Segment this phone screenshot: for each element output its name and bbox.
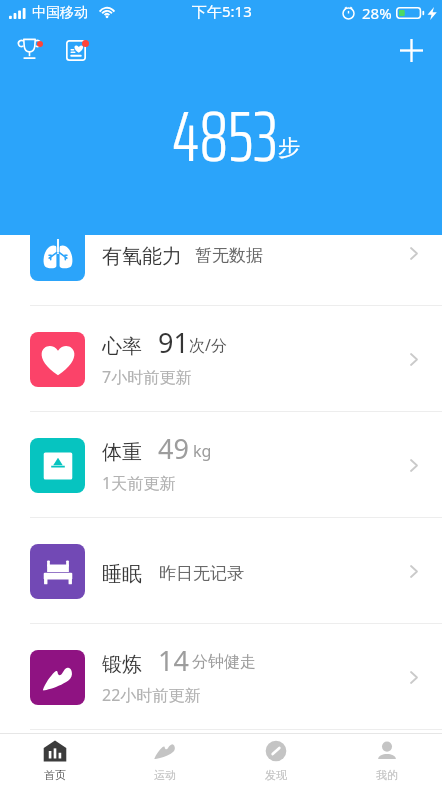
staticText: 暂无数据 bbox=[195, 245, 263, 266]
staticText: 1天前更新 bbox=[102, 472, 176, 494]
staticText: 28% bbox=[362, 3, 392, 23]
staticText: 7小时前更新 bbox=[102, 366, 192, 388]
staticText: 49 bbox=[158, 430, 189, 467]
button[interactable]: 睡眠 bbox=[0, 518, 442, 624]
button[interactable]: 添加 bbox=[388, 29, 434, 75]
button[interactable]: 首页 bbox=[0, 734, 110, 787]
button[interactable]: 我的 bbox=[331, 734, 442, 787]
staticText: 中国移动 bbox=[32, 4, 88, 22]
button[interactable]: 锻炼 bbox=[0, 624, 442, 730]
button[interactable]: 发现 bbox=[220, 734, 331, 787]
staticText: 22小时前更新 bbox=[102, 684, 201, 706]
button[interactable]: 有氧能力 bbox=[0, 200, 442, 306]
button[interactable]: 成就 bbox=[8, 30, 52, 74]
staticText: 心率 bbox=[102, 334, 142, 359]
staticText: 睡眠 bbox=[102, 562, 142, 587]
staticText: 运动 bbox=[154, 768, 176, 782]
button[interactable]: 运动 bbox=[110, 734, 220, 787]
button[interactable]: 心率 bbox=[0, 306, 442, 412]
staticText: 14 bbox=[158, 642, 189, 679]
button[interactable]: 体重 bbox=[0, 412, 442, 518]
staticText: 体重 bbox=[102, 440, 142, 465]
staticText: 次/分 bbox=[189, 334, 227, 356]
staticText: 昨日无记录 bbox=[159, 563, 244, 584]
staticText: 下午5:13 bbox=[192, 1, 252, 21]
staticText: 4853 bbox=[172, 79, 278, 192]
staticText: 步 bbox=[278, 134, 300, 162]
staticText: 锻炼 bbox=[102, 652, 142, 677]
staticText: 有氧能力 bbox=[102, 244, 182, 269]
staticText: 我的 bbox=[376, 768, 398, 782]
button[interactable]: 健康记录 bbox=[55, 30, 99, 74]
staticText: 分钟健走 bbox=[192, 652, 256, 672]
staticText: 首页 bbox=[44, 768, 66, 782]
staticText: 发现 bbox=[265, 768, 287, 782]
staticText: kg bbox=[193, 440, 212, 462]
staticText: 91 bbox=[158, 324, 189, 361]
